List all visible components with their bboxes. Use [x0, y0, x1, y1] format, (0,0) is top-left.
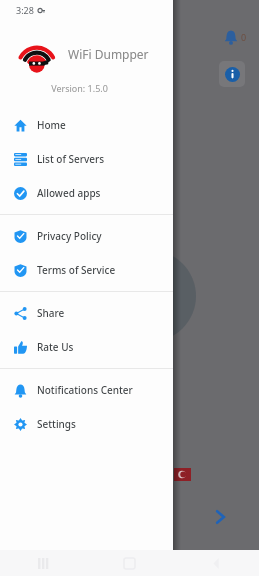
staticText: Notifications Center	[37, 383, 133, 397]
button[interactable]: Settings	[0, 407, 173, 441]
staticText: Share	[37, 306, 65, 320]
button[interactable]: List of Servers	[0, 142, 173, 176]
button[interactable]: Notifications	[220, 28, 251, 46]
button[interactable]: Recents	[30, 550, 56, 576]
staticText: WiFi Dumpper	[68, 46, 149, 62]
staticText: Terms of Service	[37, 263, 116, 277]
button[interactable]: Language	[174, 468, 191, 481]
button[interactable]: Terms of Service	[0, 253, 173, 287]
staticText: Privacy Policy	[37, 229, 102, 243]
staticText: Version: 1.5.0	[0, 82, 159, 94]
staticText: Allowed apps	[37, 186, 101, 200]
staticText: List of Servers	[37, 152, 105, 166]
staticText: 3:28	[16, 4, 34, 16]
staticText: 0	[241, 31, 247, 43]
button[interactable]: Next	[207, 504, 233, 530]
staticText: Home	[37, 118, 66, 132]
button[interactable]: Info	[219, 61, 245, 87]
staticText: Settings	[37, 417, 76, 431]
button[interactable]: Allowed apps	[0, 176, 173, 210]
button[interactable]: Privacy Policy	[0, 219, 173, 253]
button[interactable]: Home	[0, 108, 173, 142]
button[interactable]: Rate Us	[0, 330, 173, 364]
button[interactable]: Share	[0, 296, 173, 330]
staticText: Rate Us	[37, 340, 74, 354]
button[interactable]: Notifications Center	[0, 373, 173, 407]
